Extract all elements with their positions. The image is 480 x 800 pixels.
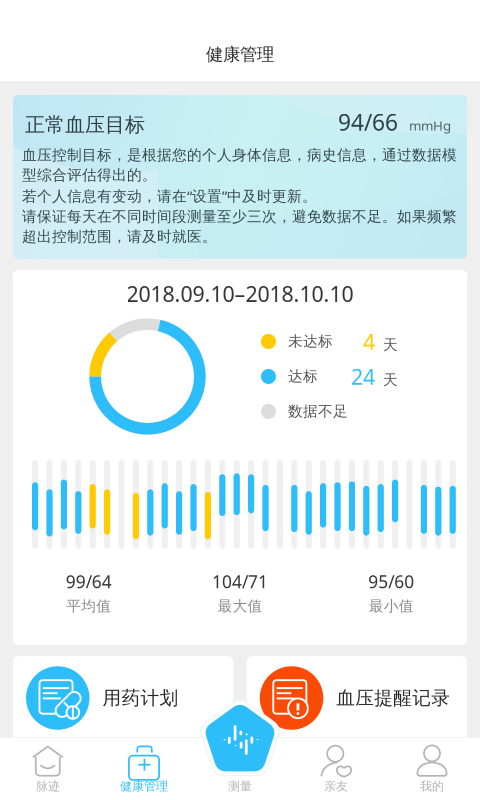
button[interactable]: 脉迹 xyxy=(0,737,96,800)
staticText: 天 xyxy=(383,371,398,389)
staticText: 若个人信息有变动，请在“设置”中及时更新。 xyxy=(22,186,317,206)
staticText: 天 xyxy=(383,336,398,354)
staticText: 4 xyxy=(363,327,375,356)
staticText: 达标 xyxy=(288,367,318,385)
button[interactable]: 血压提醒记录 xyxy=(247,656,467,740)
staticText: 超出控制范围，请及时就医。 xyxy=(22,228,217,246)
staticText: 最大值 xyxy=(217,597,262,615)
staticText: 我的 xyxy=(420,779,444,793)
button[interactable]: 健康管理 xyxy=(96,737,192,800)
staticText: 脉迹 xyxy=(36,779,60,793)
staticText: 104/71 xyxy=(212,570,268,593)
staticText: 95/60 xyxy=(368,570,414,593)
staticText: mmHg xyxy=(409,116,451,134)
button[interactable]: 我的 xyxy=(384,737,480,800)
staticText: 亲友 xyxy=(324,779,348,793)
staticText: 99/64 xyxy=(66,570,112,593)
staticText: 血压控制目标，是根据您的个人身体信息，病史信息，通过数据模 xyxy=(22,146,457,164)
button[interactable]: 测量 xyxy=(192,737,288,800)
staticText: 正常血压目标 xyxy=(25,112,145,137)
button[interactable]: 用药计划 xyxy=(13,656,233,740)
staticText: 24 xyxy=(351,362,375,391)
staticText: 血压提醒记录 xyxy=(336,686,450,709)
staticText: 用药计划 xyxy=(102,686,178,709)
staticText: 94/66 xyxy=(338,107,398,137)
staticText: 2018.09.10–2018.10.10 xyxy=(126,280,353,308)
staticText: 型综合评估得出的。 xyxy=(22,166,157,184)
button[interactable]: 测量 xyxy=(196,693,284,787)
staticText: 请保证每天在不同时间段测量至少三次，避免数据不足。如果频繁 xyxy=(22,208,457,226)
staticText: 健康管理 xyxy=(206,44,274,65)
staticText: 数据不足 xyxy=(288,402,348,420)
staticText: 测量 xyxy=(228,779,252,793)
staticText: 未达标 xyxy=(288,332,333,350)
staticText: 健康管理 xyxy=(120,779,168,793)
staticText: 平均值 xyxy=(66,597,111,615)
staticText: 最小值 xyxy=(369,597,414,615)
button[interactable]: 亲友 xyxy=(288,737,384,800)
